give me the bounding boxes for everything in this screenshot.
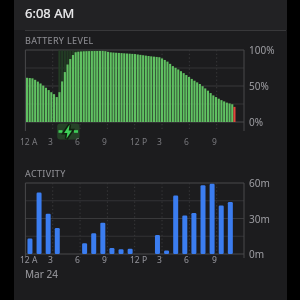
staticText: 3: [48, 136, 53, 148]
staticText: 3: [157, 136, 162, 148]
staticText: BATTERY LEVEL: [25, 34, 94, 46]
staticText: 30m: [249, 212, 270, 226]
staticText: 6:08 AM: [25, 4, 75, 20]
staticText: 3: [157, 254, 162, 266]
staticText: 60m: [249, 176, 270, 190]
staticText: 6: [184, 254, 189, 266]
staticText: 9: [102, 254, 107, 266]
staticText: 6: [75, 136, 80, 148]
button[interactable]: [14, 0, 287, 30]
staticText: 9: [102, 136, 107, 148]
staticText: 0%: [249, 115, 264, 129]
staticText: 3: [48, 254, 53, 266]
staticText: 12 P: [130, 254, 148, 266]
staticText: 0m: [249, 247, 265, 261]
staticText: 50%: [249, 79, 269, 93]
staticText: 9: [212, 254, 217, 266]
staticText: 12 P: [130, 136, 148, 148]
staticText: 9: [212, 136, 217, 148]
staticText: ACTIVITY: [25, 167, 66, 179]
staticText: 12 A: [20, 136, 38, 148]
staticText: Mar 24: [25, 267, 58, 281]
staticText: 12 A: [20, 254, 38, 266]
staticText: 100%: [249, 43, 275, 57]
staticText: 6: [184, 136, 189, 148]
staticText: 6: [75, 254, 80, 266]
